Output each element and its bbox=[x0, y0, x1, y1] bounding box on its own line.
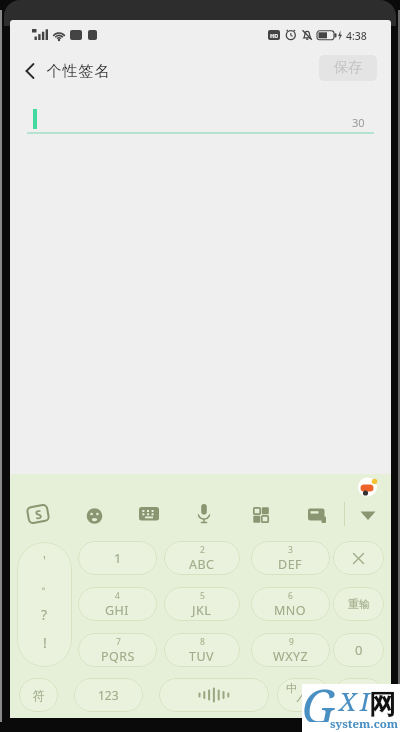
button[interactable]: 中 bbox=[277, 678, 330, 712]
staticText: 中 bbox=[286, 681, 297, 695]
staticText: G bbox=[302, 674, 336, 722]
staticText: DEF bbox=[278, 556, 303, 573]
staticText: 1 bbox=[114, 549, 122, 567]
staticText: 个性签名 bbox=[46, 62, 110, 81]
staticText: 4 bbox=[115, 590, 120, 602]
staticText: 30 bbox=[352, 115, 365, 130]
button[interactable] bbox=[253, 507, 269, 523]
button[interactable] bbox=[20, 58, 44, 82]
button[interactable]: 123 bbox=[74, 678, 143, 712]
staticText: 6 bbox=[288, 590, 293, 602]
button[interactable]: 6 bbox=[251, 587, 330, 621]
button[interactable]: ' bbox=[17, 542, 72, 667]
staticText: 3 bbox=[288, 544, 293, 556]
staticText: 7 bbox=[116, 636, 121, 648]
button[interactable] bbox=[333, 678, 384, 712]
staticText: MNO bbox=[274, 602, 307, 619]
button[interactable]: S bbox=[26, 503, 50, 525]
staticText: 保存 bbox=[334, 59, 362, 77]
staticText: 8 bbox=[200, 636, 205, 648]
button[interactable]: 5 bbox=[164, 587, 240, 621]
button[interactable]: 2 bbox=[164, 541, 240, 575]
staticText: WXYZ bbox=[273, 648, 309, 665]
staticText: X bbox=[339, 683, 357, 718]
staticText: PQRS bbox=[101, 648, 135, 665]
button[interactable]: 8 bbox=[164, 633, 240, 667]
staticText: 。 bbox=[41, 577, 53, 592]
staticText: 2 bbox=[200, 544, 205, 556]
button[interactable]: 保存 bbox=[319, 55, 377, 81]
button[interactable]: 1 bbox=[78, 541, 157, 575]
button[interactable] bbox=[360, 511, 376, 521]
staticText: HD bbox=[270, 32, 279, 39]
button[interactable] bbox=[139, 507, 160, 522]
button[interactable]: 7 bbox=[78, 633, 157, 667]
staticText: S bbox=[34, 505, 43, 522]
staticText: ? bbox=[41, 605, 48, 624]
staticText: 符 bbox=[33, 688, 45, 703]
button[interactable] bbox=[86, 508, 103, 525]
button[interactable]: 0 bbox=[333, 633, 384, 667]
staticText: ABC bbox=[189, 556, 215, 573]
button[interactable]: 3 bbox=[251, 541, 330, 575]
staticText: I bbox=[360, 683, 370, 718]
staticText: 123 bbox=[98, 687, 119, 703]
staticText: TUV bbox=[189, 648, 215, 665]
staticText: GHI bbox=[105, 602, 130, 619]
button[interactable]: 9 bbox=[251, 633, 330, 667]
button[interactable]: 符 bbox=[19, 678, 58, 712]
staticText: JKL bbox=[192, 602, 212, 619]
button[interactable] bbox=[197, 504, 211, 524]
staticText: 重输 bbox=[348, 597, 370, 611]
staticText: ' bbox=[43, 551, 46, 569]
staticText: 英 bbox=[307, 694, 318, 708]
button[interactable] bbox=[159, 678, 269, 712]
button[interactable] bbox=[308, 508, 327, 524]
button[interactable]: 4 bbox=[78, 587, 157, 621]
button[interactable]: 重输 bbox=[333, 587, 384, 621]
staticText: 4:38 bbox=[346, 29, 367, 43]
staticText: 网 bbox=[369, 688, 396, 722]
staticText: system.com bbox=[330, 716, 399, 732]
staticText: 0 bbox=[355, 641, 363, 659]
staticText: 5 bbox=[200, 590, 205, 602]
staticText: 9 bbox=[289, 636, 294, 648]
button[interactable] bbox=[333, 541, 384, 575]
staticText: ! bbox=[43, 633, 47, 652]
